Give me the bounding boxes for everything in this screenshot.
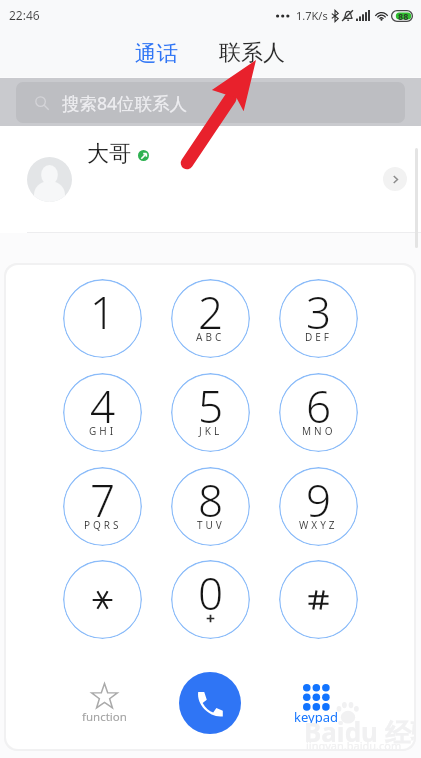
staticText: DEF (305, 330, 333, 344)
staticText: GHI (89, 424, 117, 438)
staticText: WXYZ (299, 518, 338, 532)
staticText: 1.7K/s (296, 8, 328, 23)
staticText: 大哥 (87, 140, 131, 168)
button[interactable]: 7 (63, 467, 142, 546)
button[interactable]: Open contact (383, 167, 407, 191)
staticText: 2 (198, 282, 224, 342)
staticText: 5 (198, 376, 224, 436)
button[interactable]: function (78, 678, 130, 726)
staticText: 8 (198, 470, 224, 530)
staticText: ABC (196, 330, 225, 344)
staticText: JKL (199, 424, 223, 438)
button[interactable]: 1 (63, 279, 142, 358)
staticText: 1 (90, 282, 116, 342)
button[interactable]: 联系人 (215, 36, 289, 70)
button[interactable]: keypad (290, 678, 342, 726)
staticText: 通话 (135, 40, 178, 67)
button[interactable]: 5 (171, 373, 250, 452)
button[interactable]: 0 (171, 560, 250, 639)
button[interactable]: 2 (171, 279, 250, 358)
staticText: jingyan.baidu.com (306, 738, 402, 749)
button[interactable]: 搜索84位联系人 (16, 82, 405, 123)
staticText: 7 (90, 470, 116, 530)
staticText: 6 (306, 376, 332, 436)
staticText: 联系人 (219, 39, 285, 67)
staticText: 搜索84位联系人 (62, 91, 188, 115)
staticText: 4 (90, 376, 116, 436)
staticText: 9 (306, 470, 332, 530)
staticText: 88 (398, 10, 409, 22)
button[interactable]: 大哥 (0, 126, 421, 232)
button[interactable] (63, 560, 142, 639)
staticText: TUV (197, 518, 225, 532)
button[interactable]: Call (179, 672, 241, 734)
staticText: Baidu 经验 (304, 714, 414, 749)
staticText: 0 (198, 563, 224, 623)
button[interactable]: 3 (279, 279, 358, 358)
button[interactable]: 6 (279, 373, 358, 452)
staticText: keypad (294, 708, 338, 726)
staticText: 22:46 (9, 7, 40, 23)
staticText: function (82, 709, 127, 725)
staticText: PQRS (84, 518, 122, 532)
button[interactable]: 通话 (131, 37, 182, 70)
button[interactable]: 9 (279, 467, 358, 546)
staticText: 3 (306, 282, 332, 342)
button[interactable]: 8 (171, 467, 250, 546)
button[interactable]: 4 (63, 373, 142, 452)
staticText: MNO (302, 424, 336, 438)
button[interactable] (279, 560, 358, 639)
